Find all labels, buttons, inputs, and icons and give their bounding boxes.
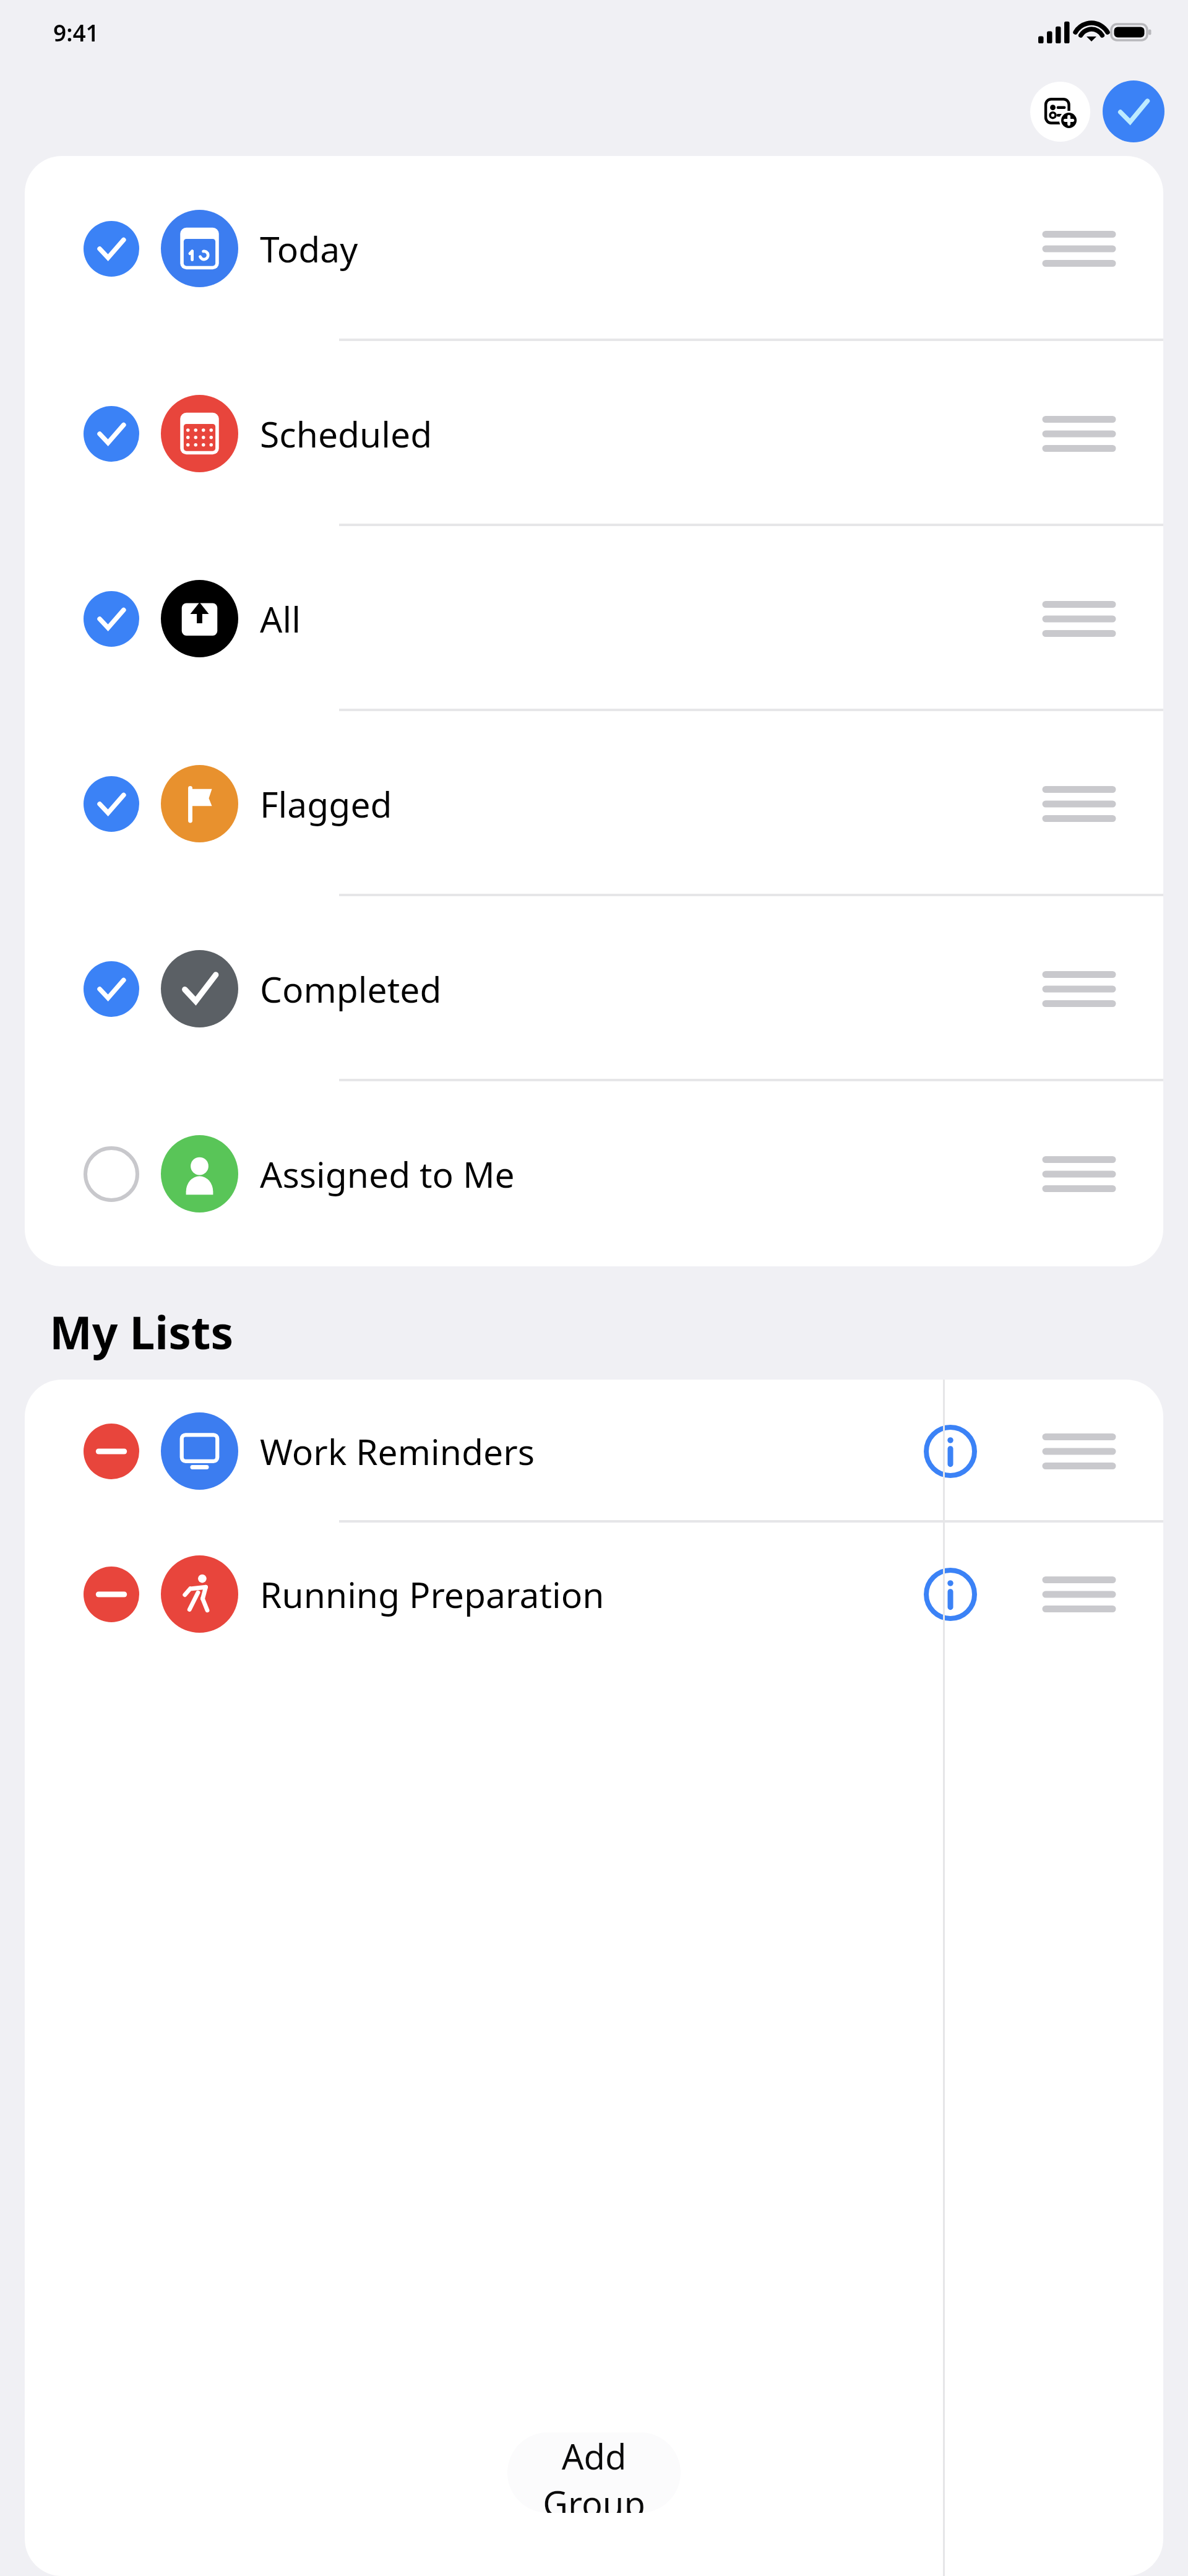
button[interactable]: Delete Running Preparation [25, 1523, 1163, 1666]
button[interactable]: Delete Work Reminders [84, 1424, 139, 1479]
staticText: Today [260, 225, 358, 273]
staticText: Completed [260, 965, 442, 1013]
button[interactable]: Info about Running Preparation [921, 1565, 980, 1624]
button[interactable]: Completed [25, 896, 1163, 1081]
other: Reorder [1046, 601, 1113, 637]
staticText: Add Group [507, 2432, 681, 2513]
button[interactable]: Add list [1030, 82, 1090, 142]
staticText: All [260, 595, 301, 643]
staticText: Running Preparation [260, 1570, 605, 1619]
button[interactable]: Done [1103, 80, 1164, 142]
other: Reorder [1046, 1156, 1113, 1192]
button[interactable]: Flagged [25, 711, 1163, 896]
button[interactable]: Delete Work Reminders [25, 1380, 1163, 1523]
button[interactable]: Scheduled [25, 341, 1163, 526]
button[interactable]: All [25, 526, 1163, 711]
staticText: Flagged [260, 780, 392, 828]
button[interactable]: Today [25, 156, 1163, 341]
other: Reorder [1046, 971, 1113, 1007]
other: Reorder [1046, 1576, 1113, 1612]
staticText: 9:41 [53, 17, 99, 48]
staticText: Scheduled [260, 410, 433, 458]
other: Reorder [1046, 786, 1113, 822]
other: Reorder [1046, 416, 1113, 452]
button[interactable]: Add Group [507, 2432, 681, 2513]
staticText: Work Reminders [260, 1427, 535, 1476]
button[interactable]: Delete Running Preparation [84, 1567, 139, 1622]
button[interactable]: Assigned to Me [25, 1081, 1163, 1266]
staticText: Assigned to Me [260, 1150, 515, 1198]
other: Reorder [1046, 231, 1113, 267]
staticText: My Lists [49, 1301, 234, 1362]
button[interactable]: Info about Work Reminders [921, 1422, 980, 1481]
other: Reorder [1046, 1433, 1113, 1469]
